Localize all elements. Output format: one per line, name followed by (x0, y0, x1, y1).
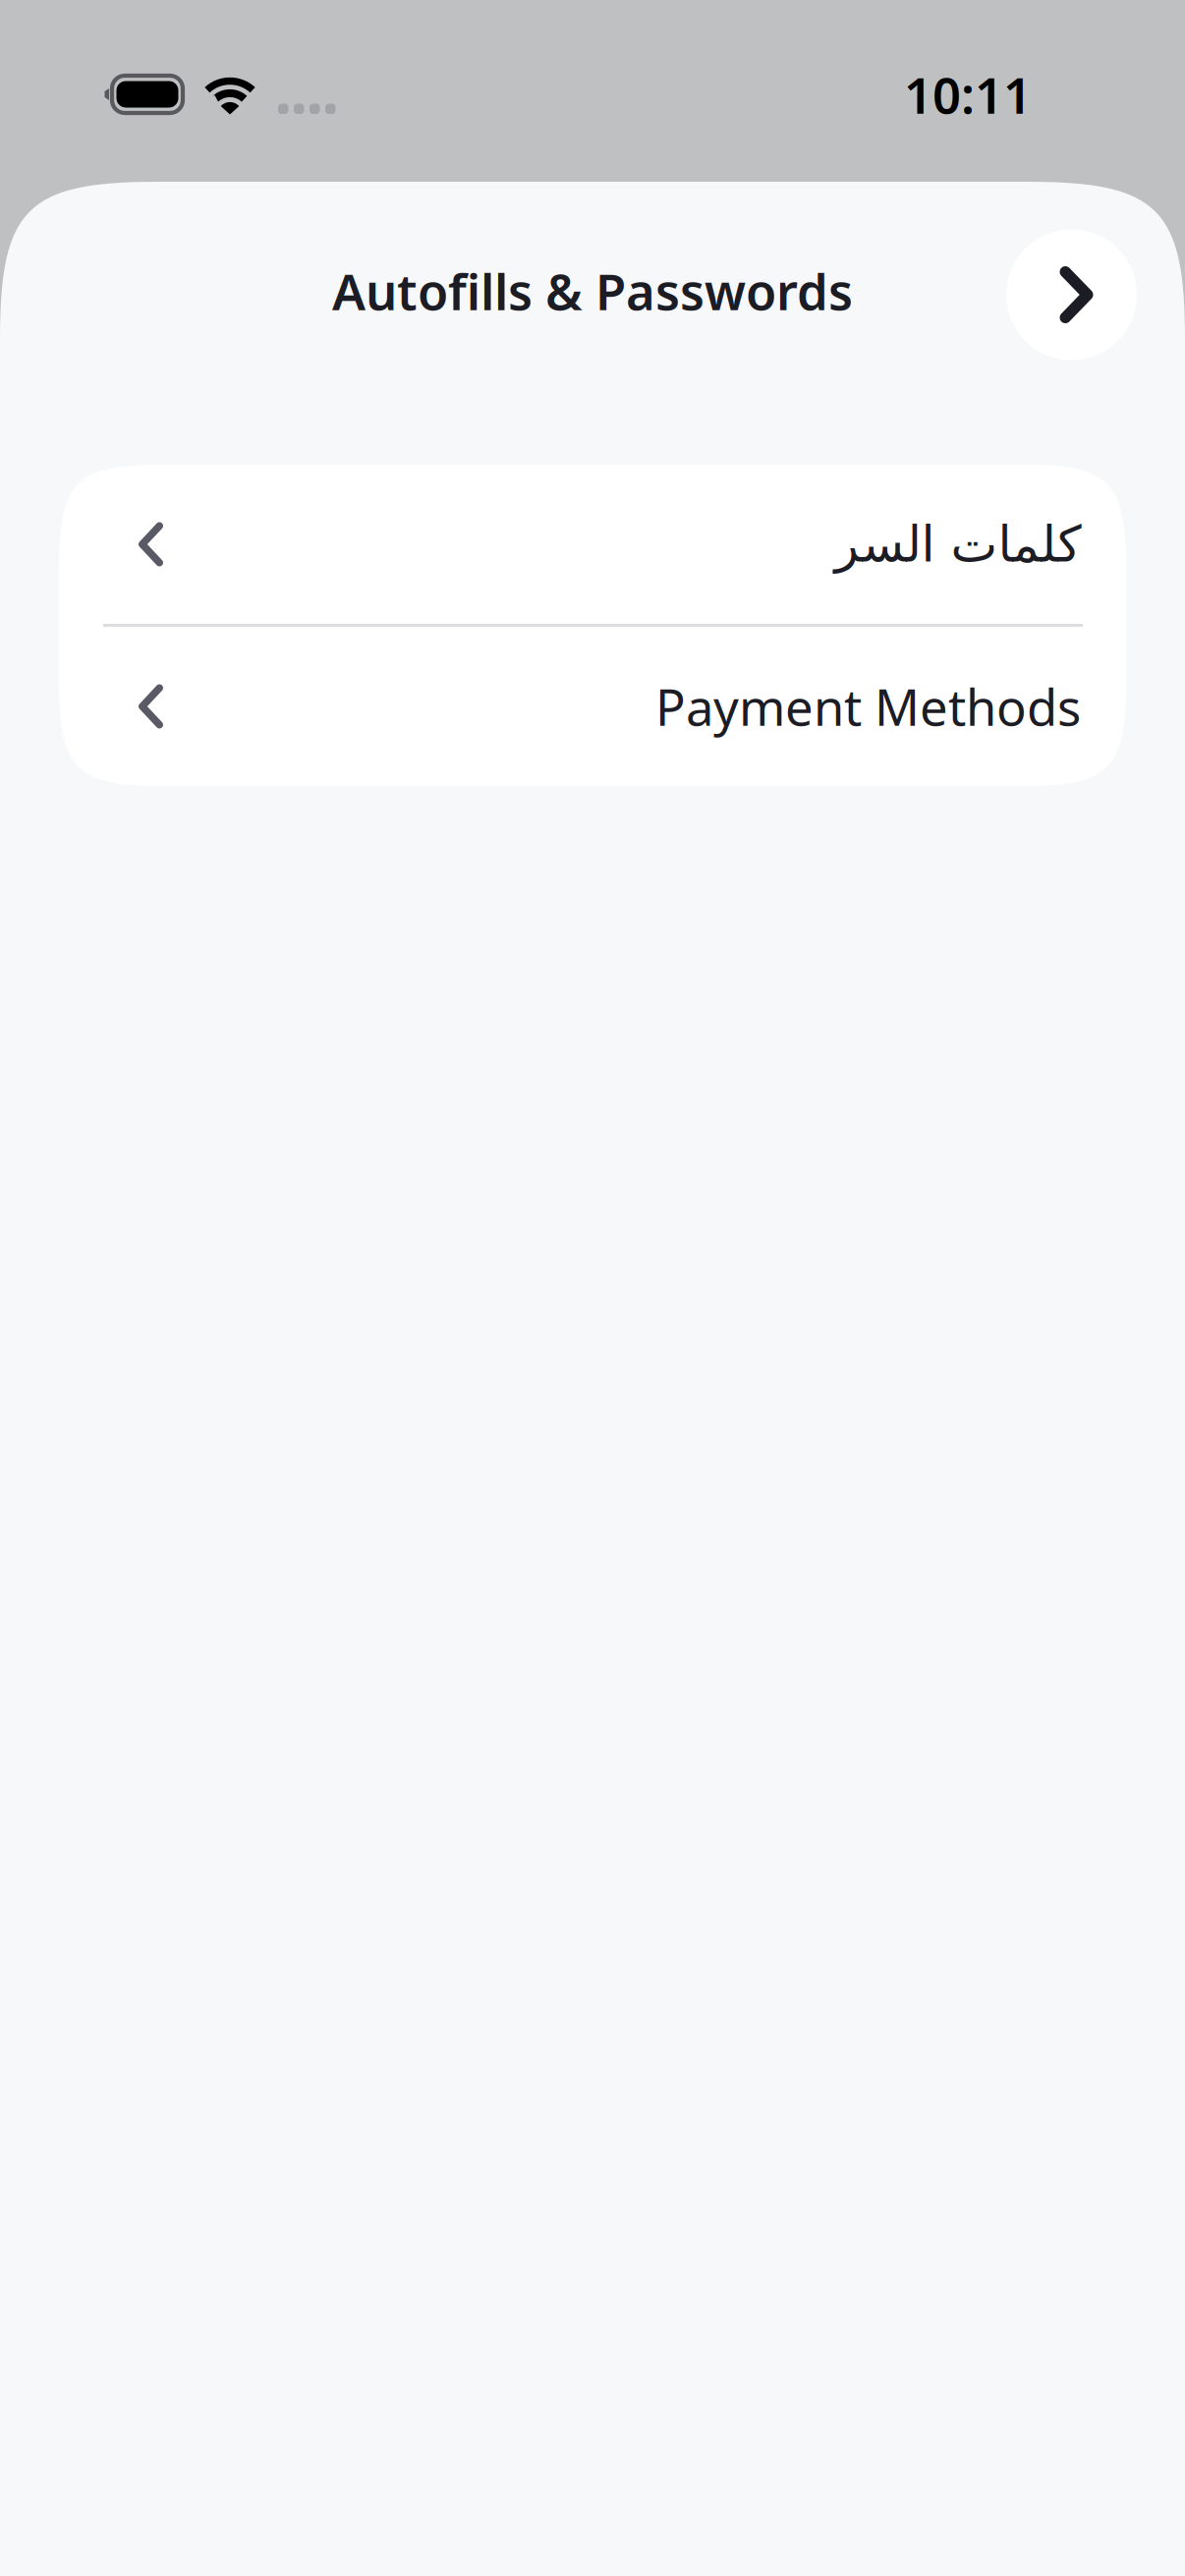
staticText: كلمات السر (834, 516, 1081, 572)
staticText: Payment Methods (655, 673, 1081, 739)
button[interactable]: كلمات السر (59, 465, 1126, 624)
staticText: 10:11 (904, 61, 1032, 127)
button[interactable]: Payment Methods (59, 627, 1126, 786)
button[interactable]: Close (1006, 229, 1137, 360)
staticText: Autofills & Passwords (332, 258, 853, 324)
